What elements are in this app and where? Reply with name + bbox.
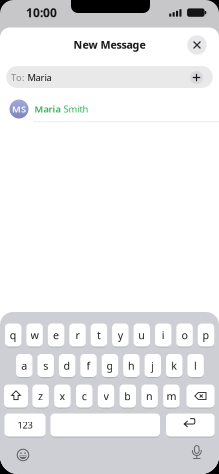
button[interactable]: Return — [166, 413, 214, 436]
staticText: d — [64, 358, 71, 373]
staticText: 123 — [17, 419, 32, 431]
button[interactable]: u — [134, 323, 150, 346]
staticText: i — [162, 328, 165, 342]
button[interactable]: i — [155, 323, 171, 346]
button[interactable]: v — [98, 384, 114, 407]
button[interactable]: c — [76, 384, 92, 407]
staticText: New Message — [73, 37, 145, 52]
staticText: h — [128, 358, 135, 373]
button[interactable]: Space — [50, 413, 160, 436]
staticText: y — [118, 328, 123, 342]
staticText: z — [38, 389, 43, 403]
button[interactable]: k — [166, 354, 182, 377]
button[interactable]: e — [48, 323, 64, 346]
button[interactable]: h — [123, 354, 140, 377]
button[interactable]: x — [54, 384, 71, 407]
staticText: f — [86, 358, 90, 373]
staticText: 10:00 — [26, 4, 57, 20]
button[interactable]: j — [145, 354, 161, 377]
staticText: v — [103, 389, 108, 403]
button[interactable]: s — [37, 354, 54, 377]
button[interactable]: Delete — [186, 384, 214, 407]
staticText: g — [106, 358, 113, 373]
button[interactable]: o — [176, 323, 193, 346]
button[interactable]: Add Contact — [190, 71, 203, 84]
staticText: t — [97, 328, 101, 342]
button[interactable]: a — [16, 354, 32, 377]
staticText: q — [10, 328, 17, 342]
button[interactable]: m — [163, 384, 180, 407]
staticText: w — [31, 328, 39, 342]
staticText: To: — [11, 71, 25, 84]
staticText: u — [138, 328, 145, 342]
staticText: Maria — [34, 103, 60, 115]
staticText: o — [182, 328, 188, 342]
button[interactable]: q — [5, 323, 21, 346]
staticText: l — [194, 358, 197, 373]
staticText: x — [59, 389, 65, 403]
button[interactable]: r — [69, 323, 86, 346]
button[interactable]: Dictation — [189, 445, 204, 459]
staticText: j — [151, 358, 154, 373]
staticText: a — [21, 358, 27, 373]
button[interactable]: z — [32, 384, 49, 407]
button[interactable]: 123 — [4, 413, 45, 436]
button[interactable]: Emoji — [16, 448, 29, 461]
button[interactable]: t — [91, 323, 107, 346]
staticText: Maria — [27, 71, 51, 84]
button[interactable]: l — [187, 354, 204, 377]
button[interactable]: y — [112, 323, 128, 346]
button[interactable]: p — [198, 323, 214, 346]
button[interactable]: d — [59, 354, 75, 377]
button[interactable]: g — [102, 354, 118, 377]
staticText: s — [43, 358, 48, 373]
button[interactable]: Close — [187, 35, 207, 55]
button[interactable]: w — [26, 323, 43, 346]
button[interactable]: b — [120, 384, 136, 407]
button[interactable]: MS — [0, 95, 219, 122]
staticText: c — [82, 389, 87, 403]
staticText: b — [124, 389, 131, 403]
staticText: MS — [12, 103, 26, 115]
button[interactable]: Shift — [4, 384, 28, 407]
staticText: p — [202, 328, 209, 342]
staticText: r — [75, 328, 79, 342]
staticText: Smith — [63, 103, 88, 115]
button[interactable]: n — [141, 384, 158, 407]
button[interactable]: f — [80, 354, 97, 377]
staticText: e — [53, 328, 59, 342]
staticText: n — [146, 389, 153, 403]
staticText: k — [171, 358, 177, 373]
staticText: m — [166, 389, 176, 403]
